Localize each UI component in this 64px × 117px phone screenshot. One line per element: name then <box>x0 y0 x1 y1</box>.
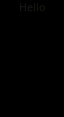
staticText: Hello <box>19 0 45 14</box>
